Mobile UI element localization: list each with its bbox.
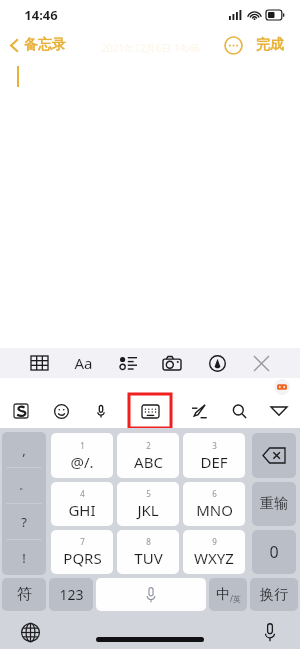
staticText: 中 — [216, 586, 230, 604]
button[interactable]: 8 — [117, 530, 179, 574]
button[interactable]: Voice input — [258, 620, 282, 644]
staticText: 。 — [19, 479, 29, 492]
button[interactable]: 完成 — [254, 32, 286, 58]
button[interactable]: Handwriting — [186, 398, 212, 424]
staticText: 9 — [212, 536, 217, 547]
staticText: 3 — [212, 440, 217, 451]
staticText: TUV — [134, 548, 163, 568]
button[interactable]: 0 — [252, 530, 296, 574]
staticText: PQRS — [63, 548, 102, 568]
button[interactable]: 备忘录 — [0, 32, 74, 58]
button[interactable]: 换行 — [250, 578, 298, 611]
button[interactable]: ! — [2, 540, 46, 575]
button[interactable] — [96, 578, 206, 611]
staticText: 123 — [59, 585, 84, 604]
button[interactable]: Search — [226, 398, 252, 424]
staticText: 2021年12月6日 14:46 — [101, 41, 200, 55]
button[interactable]: 9 — [183, 530, 245, 574]
button[interactable]: ? — [2, 504, 46, 539]
button[interactable]: , — [2, 432, 46, 467]
staticText: 6 — [212, 488, 217, 499]
staticText: 2 — [146, 440, 151, 451]
button[interactable]: Checklist — [115, 350, 141, 376]
staticText: 符 — [17, 585, 32, 604]
staticText: DEF — [200, 452, 228, 472]
button[interactable]: 5 — [117, 482, 179, 526]
staticText: 7 — [80, 536, 85, 547]
staticText: WXYZ — [194, 548, 234, 568]
button[interactable]: 中 — [209, 578, 247, 611]
button[interactable]: 7 — [51, 530, 113, 574]
staticText: 1 — [80, 440, 85, 451]
button[interactable]: Delete — [252, 433, 296, 478]
staticText: 8 — [146, 536, 151, 547]
staticText: ? — [21, 513, 27, 531]
staticText: JKL — [137, 500, 159, 520]
staticText: 4 — [80, 488, 85, 499]
staticText: @/. — [70, 452, 94, 472]
staticText: 重输 — [260, 495, 288, 513]
button[interactable]: Sogou assistant — [274, 379, 290, 395]
button[interactable]: 符 — [2, 578, 46, 611]
button[interactable]: 123 — [49, 578, 93, 611]
button[interactable]: Table — [26, 350, 52, 376]
button[interactable]: Emoji — [48, 398, 74, 424]
staticText: , — [22, 441, 26, 459]
staticText: 换行 — [260, 586, 288, 604]
button[interactable]: Markup — [204, 350, 230, 376]
button[interactable]: 3 — [183, 433, 245, 478]
button[interactable]: Camera — [159, 350, 185, 376]
staticText: 0 — [269, 541, 279, 563]
staticText: 5 — [146, 488, 151, 499]
staticText: ABC — [134, 452, 163, 472]
staticText: 完成 — [256, 36, 284, 54]
button[interactable]: Text format — [70, 350, 96, 376]
button[interactable]: Keyboard layout — [128, 394, 172, 428]
staticText: ! — [22, 549, 26, 567]
button[interactable]: Switch input language — [18, 620, 42, 644]
button[interactable]: 1 — [51, 433, 113, 478]
button[interactable]: 4 — [51, 482, 113, 526]
staticText: GHI — [68, 500, 96, 520]
button[interactable]: 2 — [117, 433, 179, 478]
button[interactable]: Hide keyboard — [266, 398, 292, 424]
staticText: 备忘录 — [24, 36, 66, 54]
button[interactable]: 6 — [183, 482, 245, 526]
staticText: MNO — [196, 500, 233, 520]
button[interactable]: Close keyboard — [248, 350, 274, 376]
staticText: /英 — [230, 593, 241, 604]
staticText: Aa — [74, 353, 93, 373]
button[interactable]: Voice input — [88, 398, 114, 424]
staticText: 14:46 — [24, 6, 58, 24]
button[interactable]: 重输 — [252, 482, 296, 526]
button[interactable]: More options — [222, 34, 244, 56]
button[interactable]: Sogou logo — [8, 398, 34, 424]
